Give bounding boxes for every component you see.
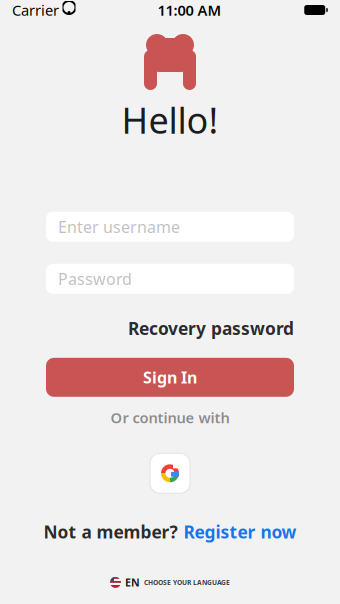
staticText: Or continue with (110, 408, 229, 427)
button[interactable]: Register now (183, 520, 296, 543)
staticText: EN (125, 575, 140, 589)
staticText: 11:00 AM (157, 0, 221, 20)
staticText: Recovery password (128, 317, 294, 340)
staticText: Enter username (58, 216, 180, 237)
staticText: CHOOSE YOUR LANGUAGE (144, 578, 230, 587)
staticText: Sign In (143, 367, 197, 388)
staticText: Carrier (12, 0, 59, 20)
button[interactable]: Continue with Google (150, 453, 190, 493)
staticText: Register now (183, 520, 296, 543)
button[interactable]: Recovery password (128, 313, 294, 344)
button[interactable]: Sign In (46, 358, 294, 397)
staticText: Not a member? (43, 520, 177, 543)
staticText: Hello! (121, 96, 218, 144)
button[interactable]: EN (104, 571, 236, 593)
staticText: Password (58, 268, 132, 289)
